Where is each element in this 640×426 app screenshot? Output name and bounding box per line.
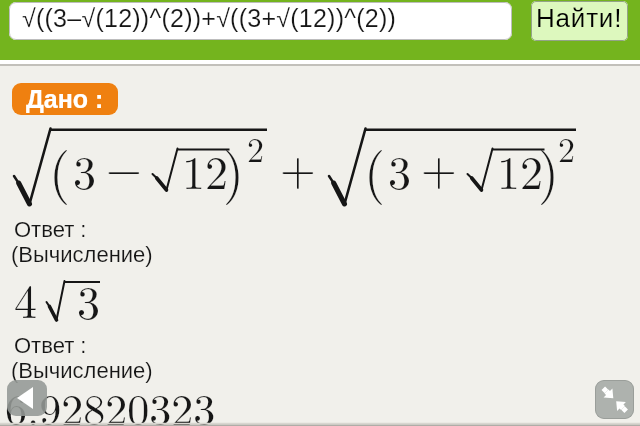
staticText: Дано :: [26, 85, 104, 113]
button[interactable]: Найти!: [531, 1, 628, 41]
staticText: Найти!: [536, 3, 623, 32]
button[interactable]: Дано :: [12, 83, 118, 115]
button[interactable]: [595, 380, 634, 419]
button[interactable]: √((3–√(12))^(2))+√((3+√(12))^(2)): [9, 2, 512, 40]
button[interactable]: [7, 380, 47, 416]
staticText: √((3–√(12))^(2))+√((3+√(12))^(2)): [22, 4, 397, 32]
